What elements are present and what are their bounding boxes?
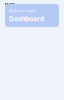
staticText: Welcome back [9,8,35,13]
staticText: Dashboard [9,14,44,23]
staticText: 9:41 [5,1,15,8]
